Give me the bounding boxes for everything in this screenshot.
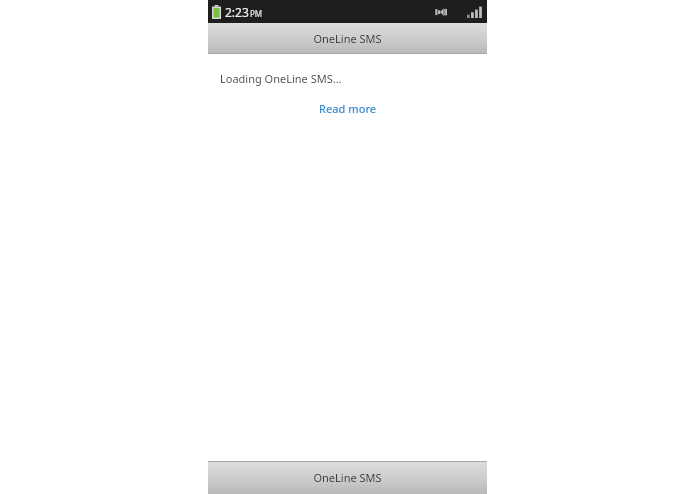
other: Signal strength	[467, 6, 482, 18]
staticText: Loading OneLine SMS...	[220, 71, 342, 86]
staticText: OneLine SMS	[313, 470, 382, 485]
button[interactable]: OneLine SMS	[208, 23, 487, 54]
staticText: Read more	[319, 101, 377, 116]
staticText: 2:23	[225, 4, 249, 20]
staticText: OneLine SMS	[313, 31, 382, 46]
staticText: PM	[250, 8, 263, 19]
button[interactable]: Read more	[315, 99, 381, 118]
other: Sound muted	[435, 5, 449, 19]
button[interactable]: OneLine SMS	[208, 461, 487, 494]
